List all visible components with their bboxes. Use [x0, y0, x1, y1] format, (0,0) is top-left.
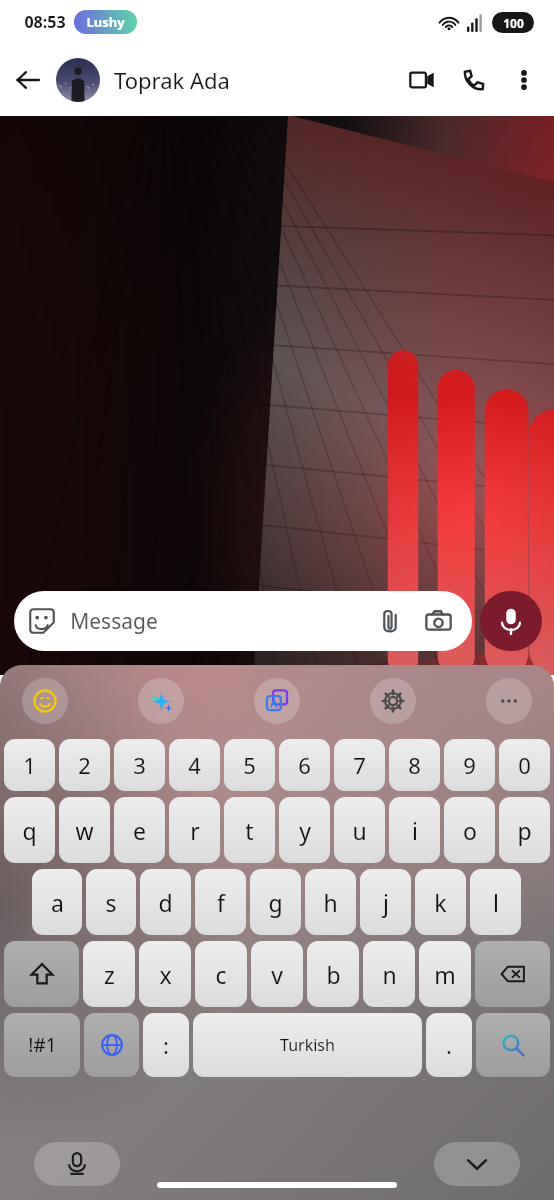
button[interactable]: s: [86, 869, 136, 935]
button[interactable]: 3: [114, 739, 165, 791]
button[interactable]: k: [415, 869, 466, 935]
button[interactable]: Message: [14, 591, 472, 651]
staticText: s: [105, 887, 117, 918]
button[interactable]: Backspace: [475, 941, 550, 1007]
staticText: x: [159, 959, 172, 990]
staticText: n: [382, 959, 397, 990]
button[interactable]: Shift: [4, 941, 79, 1007]
button[interactable]: r: [169, 797, 220, 863]
staticText: r: [190, 815, 200, 846]
button[interactable]: 7: [334, 739, 385, 791]
staticText: k: [434, 887, 447, 918]
staticText: :: [163, 1030, 169, 1060]
button[interactable]: b: [307, 941, 359, 1007]
button[interactable]: Hide keyboard: [434, 1142, 520, 1186]
staticText: a: [51, 887, 64, 918]
button[interactable]: Change language: [84, 1013, 139, 1077]
button[interactable]: AI writing: [138, 678, 184, 724]
button[interactable]: 6: [279, 739, 330, 791]
button[interactable]: Emoji: [22, 678, 68, 724]
button[interactable]: 5: [224, 739, 275, 791]
button[interactable]: p: [499, 797, 550, 863]
staticText: 0: [518, 750, 531, 780]
staticText: q: [22, 815, 37, 846]
button[interactable]: Voice message: [480, 591, 542, 651]
button[interactable]: Call: [448, 54, 500, 106]
staticText: 08:53: [24, 11, 66, 33]
button[interactable]: .: [426, 1013, 472, 1077]
button[interactable]: Attach: [370, 601, 410, 641]
button[interactable]: a: [32, 869, 82, 935]
staticText: w: [75, 815, 94, 846]
button[interactable]: c: [195, 941, 247, 1007]
staticText: v: [271, 959, 283, 990]
staticText: h: [323, 887, 338, 918]
button[interactable]: y: [279, 797, 330, 863]
button[interactable]: w: [59, 797, 110, 863]
button[interactable]: :: [143, 1013, 189, 1077]
staticText: t: [245, 815, 254, 846]
button[interactable]: 9: [444, 739, 495, 791]
button[interactable]: Settings: [370, 678, 416, 724]
button[interactable]: z: [83, 941, 135, 1007]
staticText: 100: [503, 15, 524, 31]
staticText: d: [158, 887, 173, 918]
staticText: l: [493, 887, 499, 918]
staticText: m: [434, 959, 456, 990]
button[interactable]: More options: [500, 56, 548, 104]
button[interactable]: i: [389, 797, 440, 863]
staticText: e: [133, 815, 146, 846]
button[interactable]: f: [195, 869, 246, 935]
staticText: j: [383, 887, 389, 918]
staticText: 7: [353, 750, 366, 780]
button[interactable]: 2: [59, 739, 110, 791]
button[interactable]: n: [363, 941, 415, 1007]
button[interactable]: Camera: [418, 601, 458, 641]
button[interactable]: Search: [476, 1013, 550, 1077]
staticText: .: [446, 1030, 452, 1060]
staticText: Message: [70, 607, 158, 636]
button[interactable]: !#1: [4, 1013, 80, 1077]
button[interactable]: m: [419, 941, 471, 1007]
button[interactable]: x: [139, 941, 191, 1007]
staticText: o: [463, 815, 477, 846]
button[interactable]: t: [224, 797, 275, 863]
staticText: g: [268, 887, 283, 918]
button[interactable]: u: [334, 797, 385, 863]
staticText: i: [412, 815, 418, 846]
button[interactable]: q: [4, 797, 55, 863]
staticText: 1: [23, 750, 36, 780]
staticText: 6: [298, 750, 311, 780]
button[interactable]: 4: [169, 739, 220, 791]
button[interactable]: e: [114, 797, 165, 863]
staticText: 3: [133, 750, 146, 780]
staticText: 9: [463, 750, 476, 780]
staticText: u: [352, 815, 367, 846]
button[interactable]: More: [486, 678, 532, 724]
button[interactable]: Turkish: [193, 1013, 422, 1077]
button[interactable]: Toprak Ada: [56, 58, 396, 102]
staticText: y: [299, 815, 311, 846]
button[interactable]: j: [360, 869, 411, 935]
button[interactable]: 0: [499, 739, 550, 791]
button[interactable]: h: [305, 869, 356, 935]
staticText: Lushy: [86, 13, 125, 31]
button[interactable]: 1: [4, 739, 55, 791]
button[interactable]: Back: [0, 52, 56, 108]
button[interactable]: v: [251, 941, 303, 1007]
staticText: Turkish: [280, 1034, 335, 1056]
button[interactable]: 8: [389, 739, 440, 791]
staticText: z: [104, 959, 115, 990]
button[interactable]: Video call: [396, 54, 448, 106]
staticText: 2: [78, 750, 91, 780]
staticText: !#1: [28, 1032, 57, 1058]
button[interactable]: Translate: [254, 678, 300, 724]
button[interactable]: d: [140, 869, 191, 935]
button[interactable]: l: [470, 869, 521, 935]
button[interactable]: Voice input: [34, 1142, 120, 1186]
button[interactable]: g: [250, 869, 301, 935]
staticText: Toprak Ada: [114, 65, 230, 95]
staticText: b: [326, 959, 341, 990]
button[interactable]: o: [444, 797, 495, 863]
staticText: f: [217, 887, 225, 918]
